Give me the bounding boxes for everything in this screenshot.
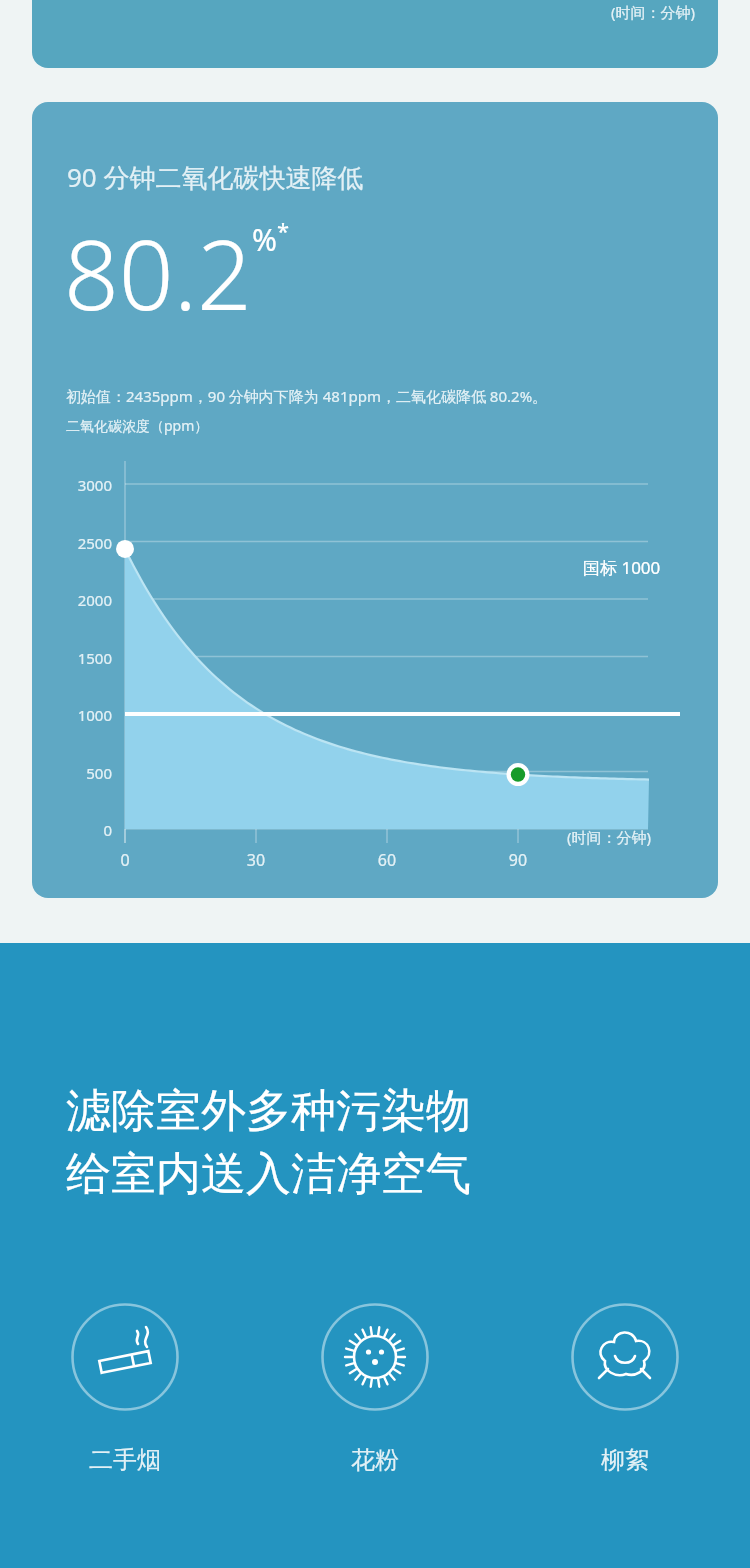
staticText: 国标 1000 <box>583 556 661 579</box>
staticText: 90 <box>488 849 548 871</box>
staticText: 90 分钟二氧化碳快速降低 <box>67 159 364 195</box>
staticText: 二手烟 <box>89 1445 161 1475</box>
staticText: 0 <box>32 820 112 840</box>
staticText: 2500 <box>32 533 112 553</box>
staticText: 30 <box>226 849 286 871</box>
staticText: 0 <box>95 849 155 871</box>
staticText: (时间：分钟) <box>611 2 696 22</box>
staticText: 60 <box>357 849 417 871</box>
button[interactable]: (时间：分钟) <box>32 0 718 68</box>
staticText: 给室内送入洁净空气 <box>66 1146 471 1203</box>
staticText: 花粉 <box>351 1445 399 1475</box>
staticText: 2000 <box>32 590 112 610</box>
staticText: 初始值：2435ppm，90 分钟内下降为 481ppm，二氧化碳降低 80.2… <box>66 386 548 406</box>
button[interactable]: 二手烟 <box>0 1303 250 1475</box>
staticText: % <box>252 219 277 260</box>
staticText: 500 <box>32 763 112 783</box>
staticText: 滤除室外多种污染物 <box>66 1083 471 1140</box>
staticText: 80.2 <box>64 207 252 338</box>
button[interactable]: 柳絮 <box>500 1303 750 1475</box>
button[interactable]: 花粉 <box>250 1303 500 1475</box>
staticText: 3000 <box>32 475 112 495</box>
staticText: 二氧化碳浓度（ppm） <box>66 416 209 435</box>
staticText: 1500 <box>32 648 112 668</box>
staticText: 1000 <box>32 705 112 725</box>
button[interactable]: 90 分钟二氧化碳快速降低 <box>32 102 718 898</box>
staticText: * <box>277 215 290 245</box>
staticText: (时间：分钟) <box>567 827 652 847</box>
staticText: 柳絮 <box>601 1445 649 1475</box>
